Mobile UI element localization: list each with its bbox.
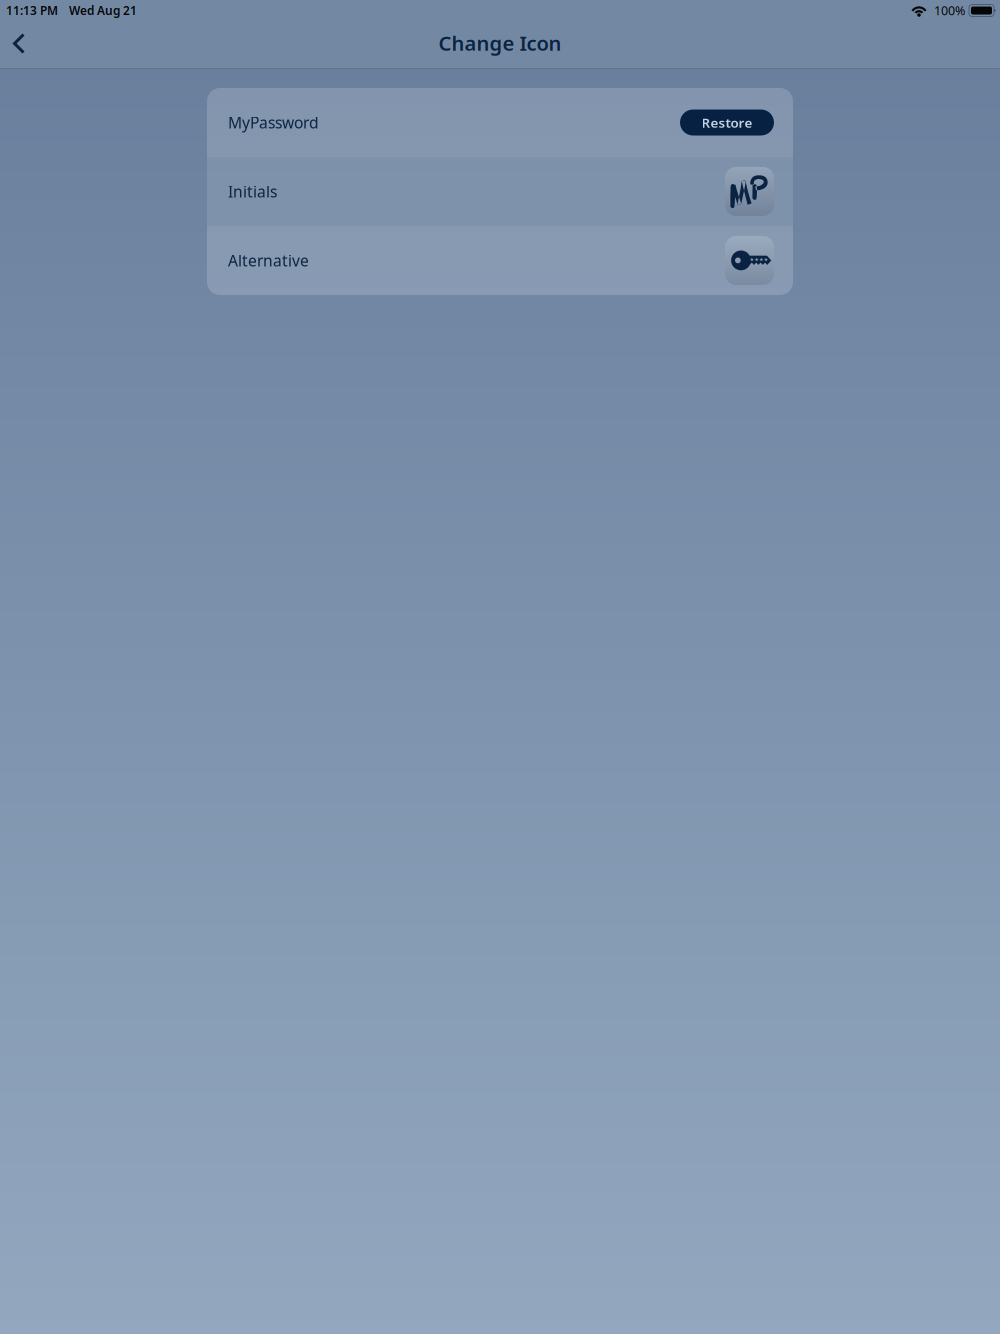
staticText: Alternative	[228, 250, 309, 271]
staticText: 100%	[934, 2, 965, 19]
staticText: MyPassword	[228, 112, 319, 133]
button[interactable]: Back	[0, 20, 38, 69]
button[interactable]: Restore	[680, 109, 774, 135]
staticText: 11:13 PM	[6, 2, 58, 19]
button[interactable]: Alternative	[207, 226, 793, 295]
button[interactable]: MyPassword	[207, 88, 793, 157]
staticText: Restore	[701, 113, 752, 132]
button[interactable]: Initials	[207, 157, 793, 226]
staticText: Initials	[228, 181, 277, 202]
staticText: Wed Aug 21	[69, 2, 137, 19]
staticText: Change Icon	[438, 29, 561, 57]
